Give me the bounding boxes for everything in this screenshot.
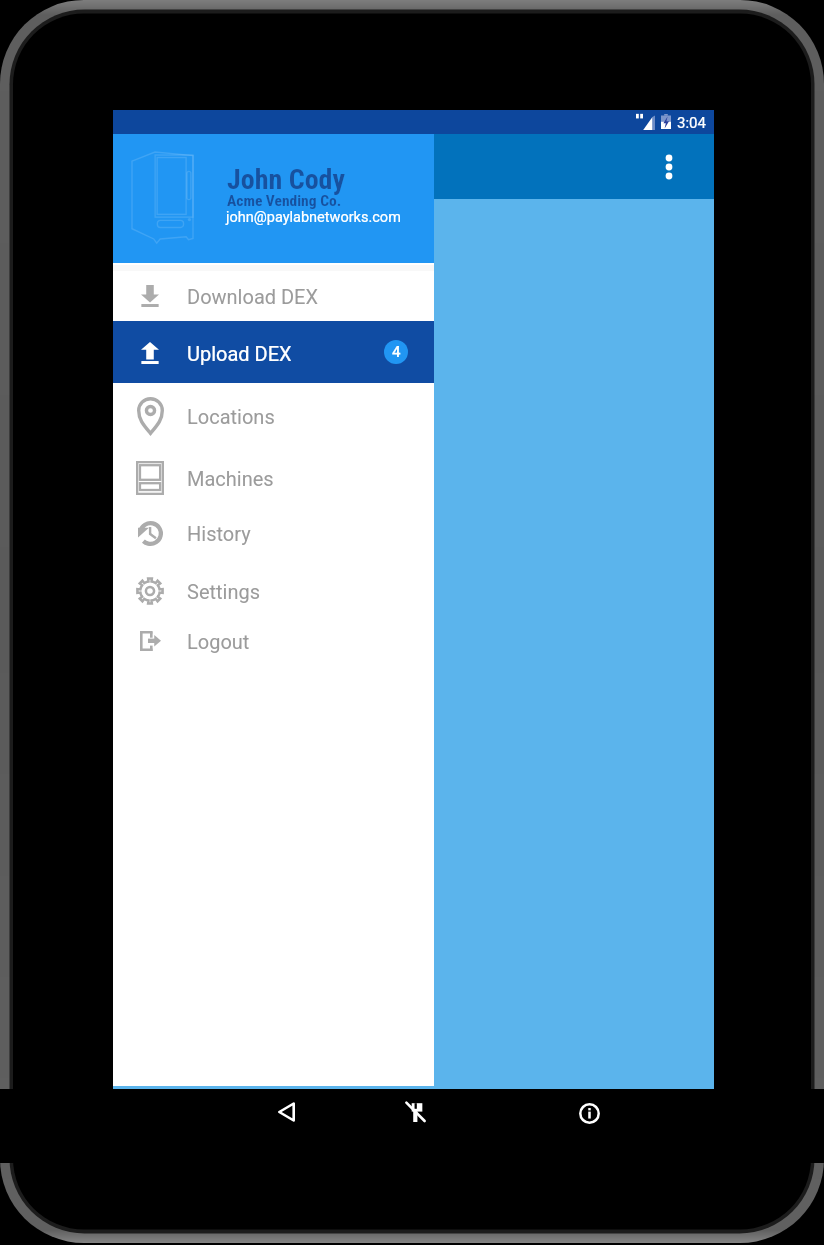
button[interactable]: Locations (113, 383, 434, 445)
staticText: Logout (187, 630, 250, 653)
button[interactable]: Machines (113, 445, 434, 501)
staticText: John Cody (227, 163, 345, 196)
staticText: History (187, 522, 251, 545)
staticText: Machines (187, 467, 274, 490)
button[interactable]: Settings (113, 558, 434, 608)
staticText: 4 (392, 343, 401, 361)
staticText: Upload DEX (187, 342, 292, 365)
button[interactable]: More options (647, 145, 691, 189)
button[interactable]: Back (262, 1089, 310, 1135)
staticText: Download DEX (187, 285, 319, 308)
button[interactable]: Download DEX (113, 263, 434, 321)
button[interactable]: Info (565, 1090, 613, 1136)
button[interactable]: History (113, 501, 434, 558)
button[interactable]: Upload DEX (113, 321, 434, 383)
staticText: Acme Vending Co. (227, 192, 342, 210)
button[interactable]: Logout (113, 608, 434, 660)
staticText: Locations (187, 405, 275, 428)
staticText: john@paylabnetworks.com (226, 209, 401, 226)
button[interactable]: Hide keyboard (391, 1089, 439, 1135)
staticText: 3:04 (677, 114, 706, 132)
staticText: Settings (187, 580, 261, 603)
